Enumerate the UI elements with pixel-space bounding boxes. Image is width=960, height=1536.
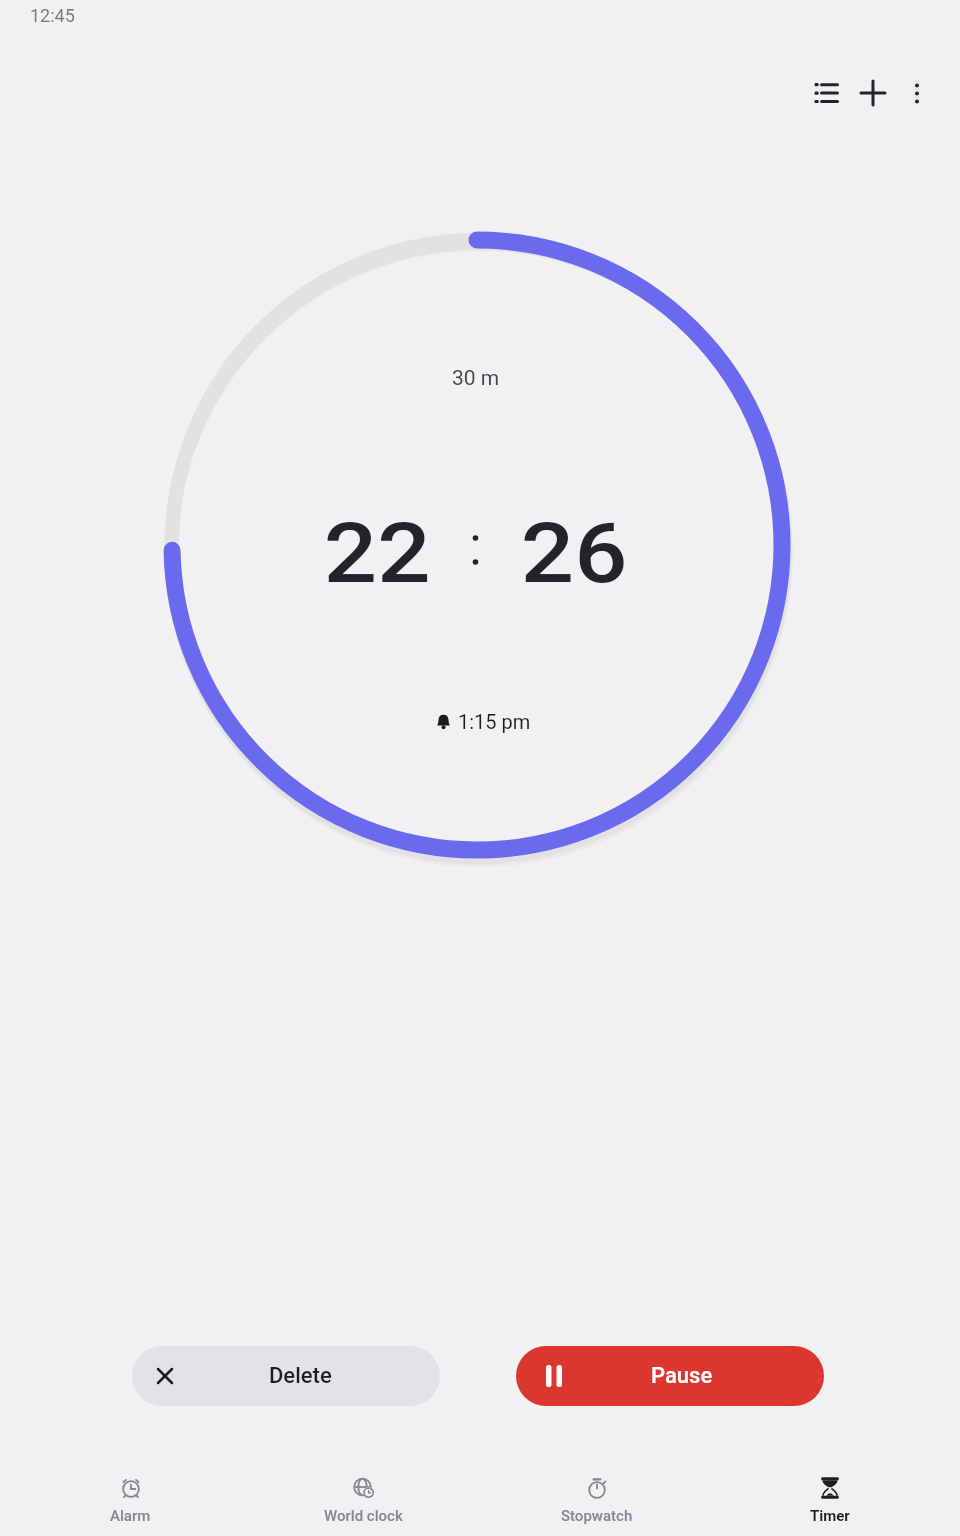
staticText: Timer <box>810 1507 850 1525</box>
button[interactable]: Alarm <box>14 1462 247 1532</box>
staticText: Alarm <box>110 1507 151 1525</box>
button[interactable]: Pause <box>516 1346 824 1406</box>
staticText: 30 m <box>452 366 500 391</box>
staticText: Delete <box>269 1363 332 1389</box>
staticText: 12:45 <box>30 5 75 26</box>
button[interactable]: Timer <box>713 1462 946 1532</box>
button[interactable] <box>893 69 941 117</box>
button[interactable]: Stopwatch <box>480 1462 713 1532</box>
button[interactable] <box>849 69 897 117</box>
button[interactable]: World clock <box>247 1462 480 1532</box>
staticText: 1:15 pm <box>458 710 531 733</box>
button[interactable] <box>802 69 850 117</box>
staticText: Pause <box>651 1363 713 1389</box>
staticText: Stopwatch <box>561 1507 633 1525</box>
staticText: World clock <box>324 1507 403 1525</box>
staticText: 22 <box>324 505 431 602</box>
button[interactable]: Delete <box>132 1346 440 1406</box>
staticText: 26 <box>521 505 628 602</box>
